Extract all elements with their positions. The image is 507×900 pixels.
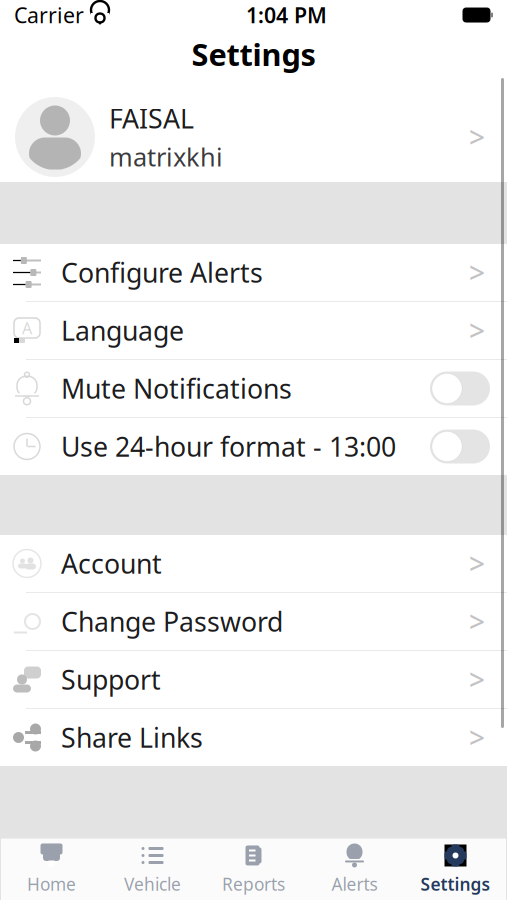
staticText: > xyxy=(469,312,485,349)
staticText: Settings xyxy=(420,872,490,895)
staticText: Settings xyxy=(191,34,315,74)
button[interactable]: Change Password xyxy=(0,593,507,650)
staticText: > xyxy=(469,118,485,156)
staticText: Configure Alerts xyxy=(61,255,263,290)
staticText: > xyxy=(469,661,485,698)
button[interactable]: Settings xyxy=(405,838,506,900)
staticText: matrixkhi xyxy=(109,140,223,173)
button[interactable]: Use 24-hour format - 13:00 xyxy=(430,429,490,463)
staticText: > xyxy=(469,545,485,582)
button[interactable]: A xyxy=(0,302,507,359)
staticText: Carrier xyxy=(14,1,84,29)
staticText: Home xyxy=(27,872,76,895)
staticText: Use 24-hour format - 13:00 xyxy=(61,429,396,464)
button[interactable]: Support xyxy=(0,651,507,708)
staticText: FAISAL xyxy=(109,100,194,136)
staticText: Vehicle xyxy=(124,872,181,895)
button[interactable]: Configure Alerts xyxy=(0,244,507,301)
button[interactable]: Account xyxy=(0,535,507,592)
staticText: > xyxy=(469,254,485,291)
staticText: Support xyxy=(61,662,161,697)
button[interactable]: Alerts xyxy=(304,838,405,900)
button[interactable]: Vehicle xyxy=(102,838,203,900)
staticText: Share Links xyxy=(61,720,203,755)
button[interactable]: Share Links xyxy=(0,709,507,766)
button[interactable]: Home xyxy=(1,838,102,900)
staticText: > xyxy=(469,603,485,640)
staticText: 1:04 PM xyxy=(246,1,327,29)
staticText: > xyxy=(469,719,485,756)
button[interactable]: Reports xyxy=(203,838,304,900)
staticText: Language xyxy=(61,313,184,348)
staticText: Alerts xyxy=(331,872,377,895)
staticText: A xyxy=(22,317,32,339)
staticText: Reports xyxy=(222,872,285,895)
staticText: Change Password xyxy=(61,604,283,639)
button[interactable]: FAISAL xyxy=(0,92,507,182)
button[interactable]: Mute Notifications xyxy=(430,371,490,405)
staticText: Mute Notifications xyxy=(61,371,292,406)
staticText: Account xyxy=(61,546,162,581)
